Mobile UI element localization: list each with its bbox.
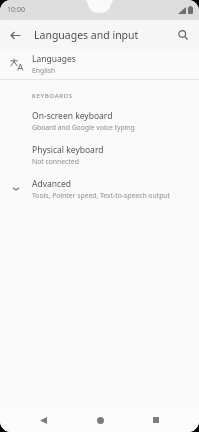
staticText: Advanced bbox=[32, 178, 72, 190]
staticText: KEYBOARDS bbox=[32, 92, 73, 100]
button[interactable]: On-screen keyboard bbox=[0, 109, 199, 133]
staticText: Languages and input bbox=[34, 28, 139, 42]
staticText: Languages bbox=[32, 53, 76, 65]
button[interactable]: Home bbox=[91, 411, 109, 429]
staticText: English bbox=[32, 66, 56, 75]
staticText: 10:00 bbox=[7, 5, 25, 15]
button[interactable]: Physical keyboard bbox=[0, 143, 199, 167]
button[interactable]: Recent apps bbox=[147, 411, 165, 429]
button[interactable]: Back bbox=[34, 411, 52, 429]
staticText: Gboard and Google voice typing bbox=[32, 123, 135, 132]
staticText: Not connected bbox=[32, 157, 79, 166]
button[interactable]: Advanced bbox=[0, 177, 199, 201]
staticText: Physical keyboard bbox=[32, 144, 104, 156]
button[interactable]: Back bbox=[4, 24, 26, 46]
staticText: On-screen keyboard bbox=[32, 110, 113, 122]
staticText: Tools, Pointer speed, Text-to-speech out… bbox=[32, 191, 170, 200]
button[interactable]: Search bbox=[172, 24, 194, 46]
button[interactable]: Languages bbox=[0, 49, 199, 79]
